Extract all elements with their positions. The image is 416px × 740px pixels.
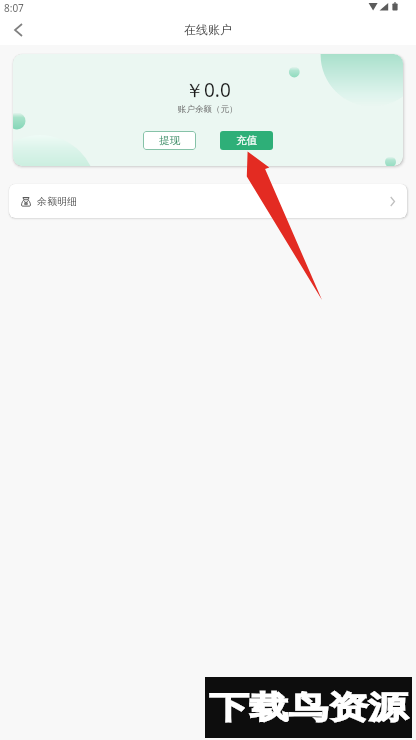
button[interactable]: Back [5, 16, 32, 43]
staticText: 提现 [159, 134, 180, 147]
staticText: 账户余额（元） [178, 104, 238, 115]
staticText: 8:07 [4, 1, 24, 15]
button[interactable]: 余额明细 [9, 184, 407, 218]
staticText: 充值 [236, 134, 257, 147]
staticText: 下载鸟资源 [209, 688, 408, 727]
staticText: ￥0.0 [185, 77, 231, 103]
button[interactable]: 提现 [143, 131, 196, 150]
staticText: 余额明细 [37, 195, 77, 208]
staticText: 在线账户 [184, 22, 232, 37]
button[interactable]: 充值 [220, 131, 273, 150]
